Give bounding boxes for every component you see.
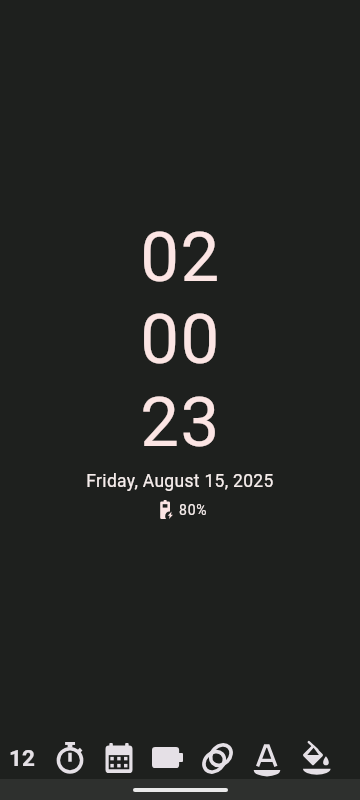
button[interactable]: Clock style <box>193 730 241 779</box>
button[interactable]: Show date <box>95 730 143 779</box>
button[interactable]: 12 hour clock format <box>0 730 46 779</box>
staticText: Friday, August 15, 2025 <box>86 471 274 492</box>
button[interactable]: Show battery <box>143 730 191 779</box>
staticText: 12 <box>9 745 35 771</box>
staticText: 80% <box>179 502 208 518</box>
button[interactable]: Text colour <box>242 730 290 779</box>
staticText: 00 <box>140 299 221 380</box>
button[interactable]: Fill colour <box>292 730 340 779</box>
button[interactable]: Show seconds <box>46 730 94 779</box>
staticText: 23 <box>140 382 221 463</box>
staticText: 02 <box>140 217 221 298</box>
